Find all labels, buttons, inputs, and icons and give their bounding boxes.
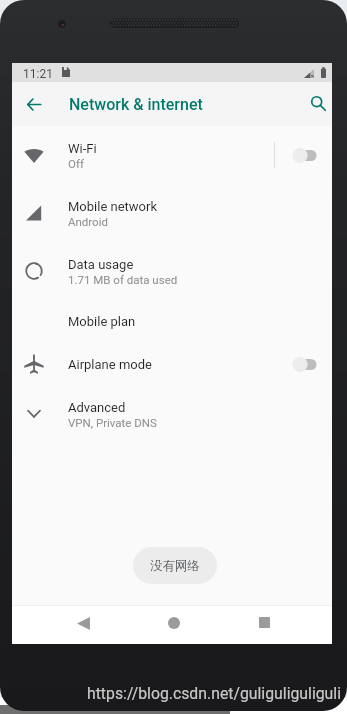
- button[interactable]: Search: [302, 87, 334, 119]
- staticText: Network & internet: [69, 95, 203, 114]
- staticText: Airplane mode: [68, 357, 152, 372]
- button[interactable]: Advanced: [12, 385, 332, 443]
- staticText: 没有网络: [150, 558, 200, 574]
- staticText: Off: [68, 157, 84, 170]
- button[interactable]: Back: [63, 604, 103, 643]
- staticText: 1.71 MB of data used: [68, 273, 178, 286]
- staticText: Android: [68, 215, 108, 228]
- staticText: Mobile network: [68, 199, 158, 214]
- staticText: Mobile plan: [68, 314, 136, 329]
- button[interactable]: Toggle Airplane mode: [290, 345, 332, 383]
- button[interactable]: Mobile plan: [12, 300, 332, 343]
- button[interactable]: Recents: [244, 603, 284, 642]
- button[interactable]: Home: [154, 603, 194, 642]
- staticText: 11:21: [23, 67, 53, 81]
- button[interactable]: Mobile network: [12, 184, 332, 242]
- button[interactable]: Data usage: [12, 242, 332, 300]
- staticText: Advanced: [68, 400, 126, 415]
- button[interactable]: Airplane mode: [12, 343, 332, 385]
- staticText: VPN, Private DNS: [68, 416, 157, 429]
- button[interactable]: Wi-Fi: [12, 126, 332, 184]
- staticText: Wi-Fi: [68, 141, 97, 156]
- staticText: Data usage: [68, 257, 134, 272]
- staticText: https://blog.csdn.net/guliguliguliguli: [87, 684, 341, 703]
- button[interactable]: Back: [18, 88, 50, 120]
- button[interactable]: Toggle Wi-Fi: [290, 136, 332, 174]
